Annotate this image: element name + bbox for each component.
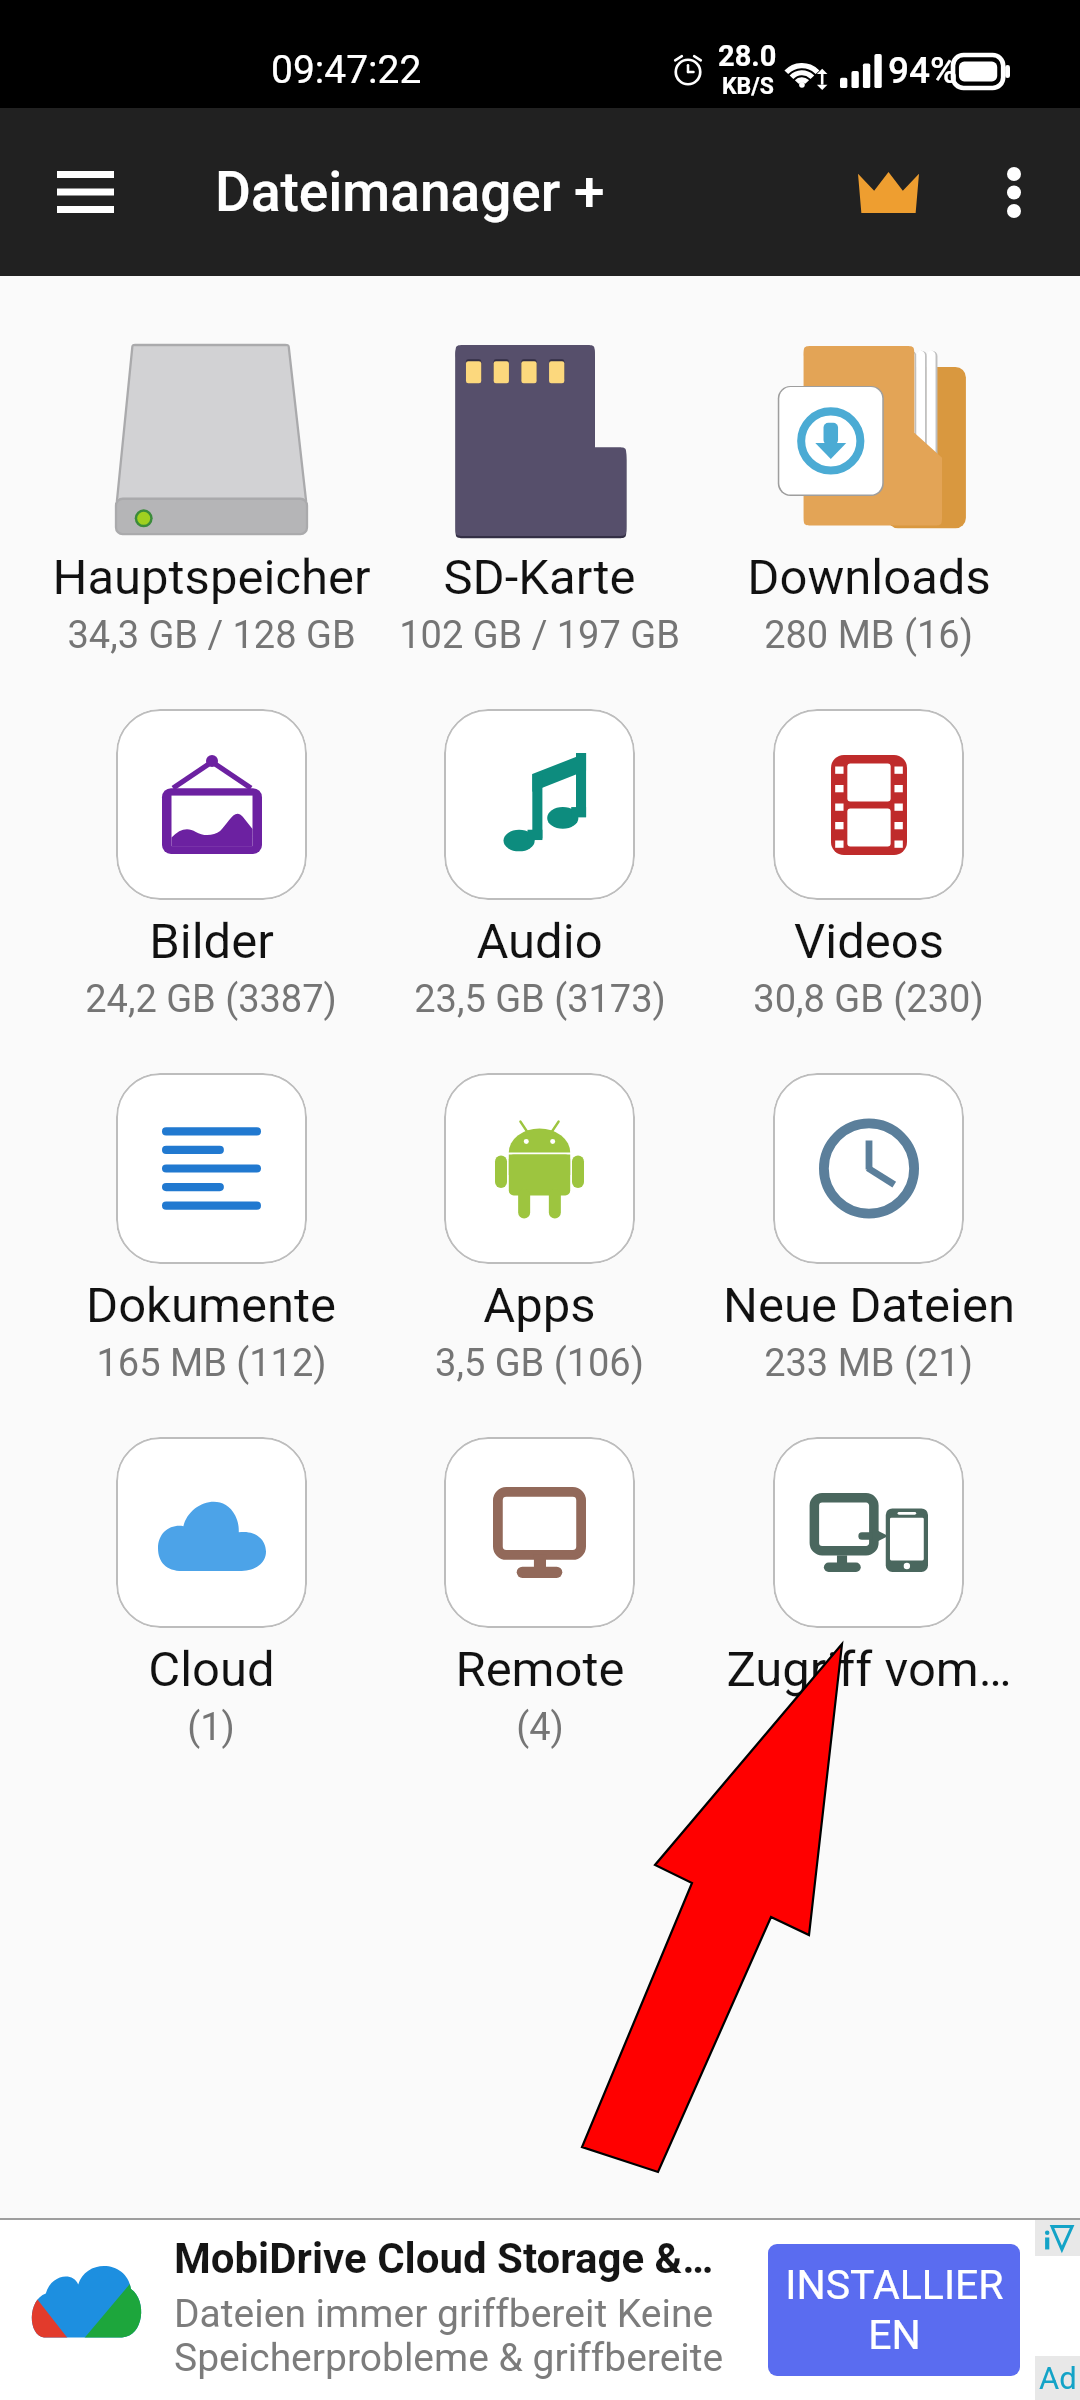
staticText: Ad xyxy=(1039,2360,1077,2396)
staticText: Cloud xyxy=(148,1641,275,1698)
staticText: 34,3 GB / 128 GB xyxy=(67,613,356,658)
staticText: 28.0 xyxy=(718,39,777,73)
staticText: (1) xyxy=(187,1705,235,1750)
staticText: Audio xyxy=(476,913,603,970)
button[interactable]: Bilder xyxy=(47,709,375,1022)
staticText: 102 GB / 197 GB xyxy=(399,613,680,658)
staticText: INSTALLIER EN xyxy=(785,2261,1004,2359)
button[interactable]: Audio xyxy=(375,709,704,1022)
staticText: Dateien immer griffbereit Keine Speicher… xyxy=(174,2291,724,2380)
staticText: 165 MB (112) xyxy=(96,1341,327,1386)
button[interactable]: INSTALLIER EN xyxy=(768,2244,1020,2376)
staticText: Videos xyxy=(794,913,944,970)
staticText: 233 MB (21) xyxy=(764,1341,973,1386)
staticText: Hauptspeicher xyxy=(52,549,371,606)
staticText: 3,5 GB (106) xyxy=(435,1341,644,1386)
staticText: 30,8 GB (230) xyxy=(753,977,984,1022)
button[interactable]: Videos xyxy=(704,709,1033,1022)
button[interactable]: Navigation menu xyxy=(29,136,141,248)
staticText: Neue Dateien xyxy=(723,1277,1015,1334)
staticText: 280 MB (16) xyxy=(764,613,973,658)
staticText: Dateimanager + xyxy=(215,160,605,224)
staticText: Zugriff vom… xyxy=(726,1641,1012,1698)
button[interactable]: Hauptspeicher xyxy=(47,345,375,658)
staticText: 94% xyxy=(888,49,958,92)
button[interactable]: Cloud xyxy=(47,1437,375,1750)
staticText: (4) xyxy=(516,1705,564,1750)
staticText: 09:47:22 xyxy=(271,47,422,93)
button[interactable]: Downloads xyxy=(704,345,1033,658)
button[interactable]: Dokumente xyxy=(47,1073,375,1386)
staticText: 24,2 GB (3387) xyxy=(85,977,337,1022)
button[interactable]: Premium xyxy=(836,140,940,244)
staticText: SD-Karte xyxy=(443,549,636,606)
staticText: Downloads xyxy=(747,549,991,606)
button[interactable]: AdChoices xyxy=(1035,2220,1080,2256)
staticText: Remote xyxy=(455,1641,625,1698)
button[interactable]: SD-Karte xyxy=(375,345,704,658)
staticText: 23,5 GB (3173) xyxy=(414,977,666,1022)
staticText: KB/S xyxy=(722,73,774,100)
staticText: Bilder xyxy=(149,913,274,970)
staticText: MobiDrive Cloud Storage &… xyxy=(174,2234,714,2283)
button[interactable]: Neue Dateien xyxy=(704,1073,1033,1386)
staticText: Apps xyxy=(483,1277,596,1334)
button[interactable]: Zugriff vom… xyxy=(704,1437,1033,1705)
button[interactable]: Remote xyxy=(375,1437,704,1750)
button[interactable]: More options xyxy=(962,140,1066,244)
button[interactable]: Apps xyxy=(375,1073,704,1386)
staticText: Dokumente xyxy=(86,1277,336,1334)
